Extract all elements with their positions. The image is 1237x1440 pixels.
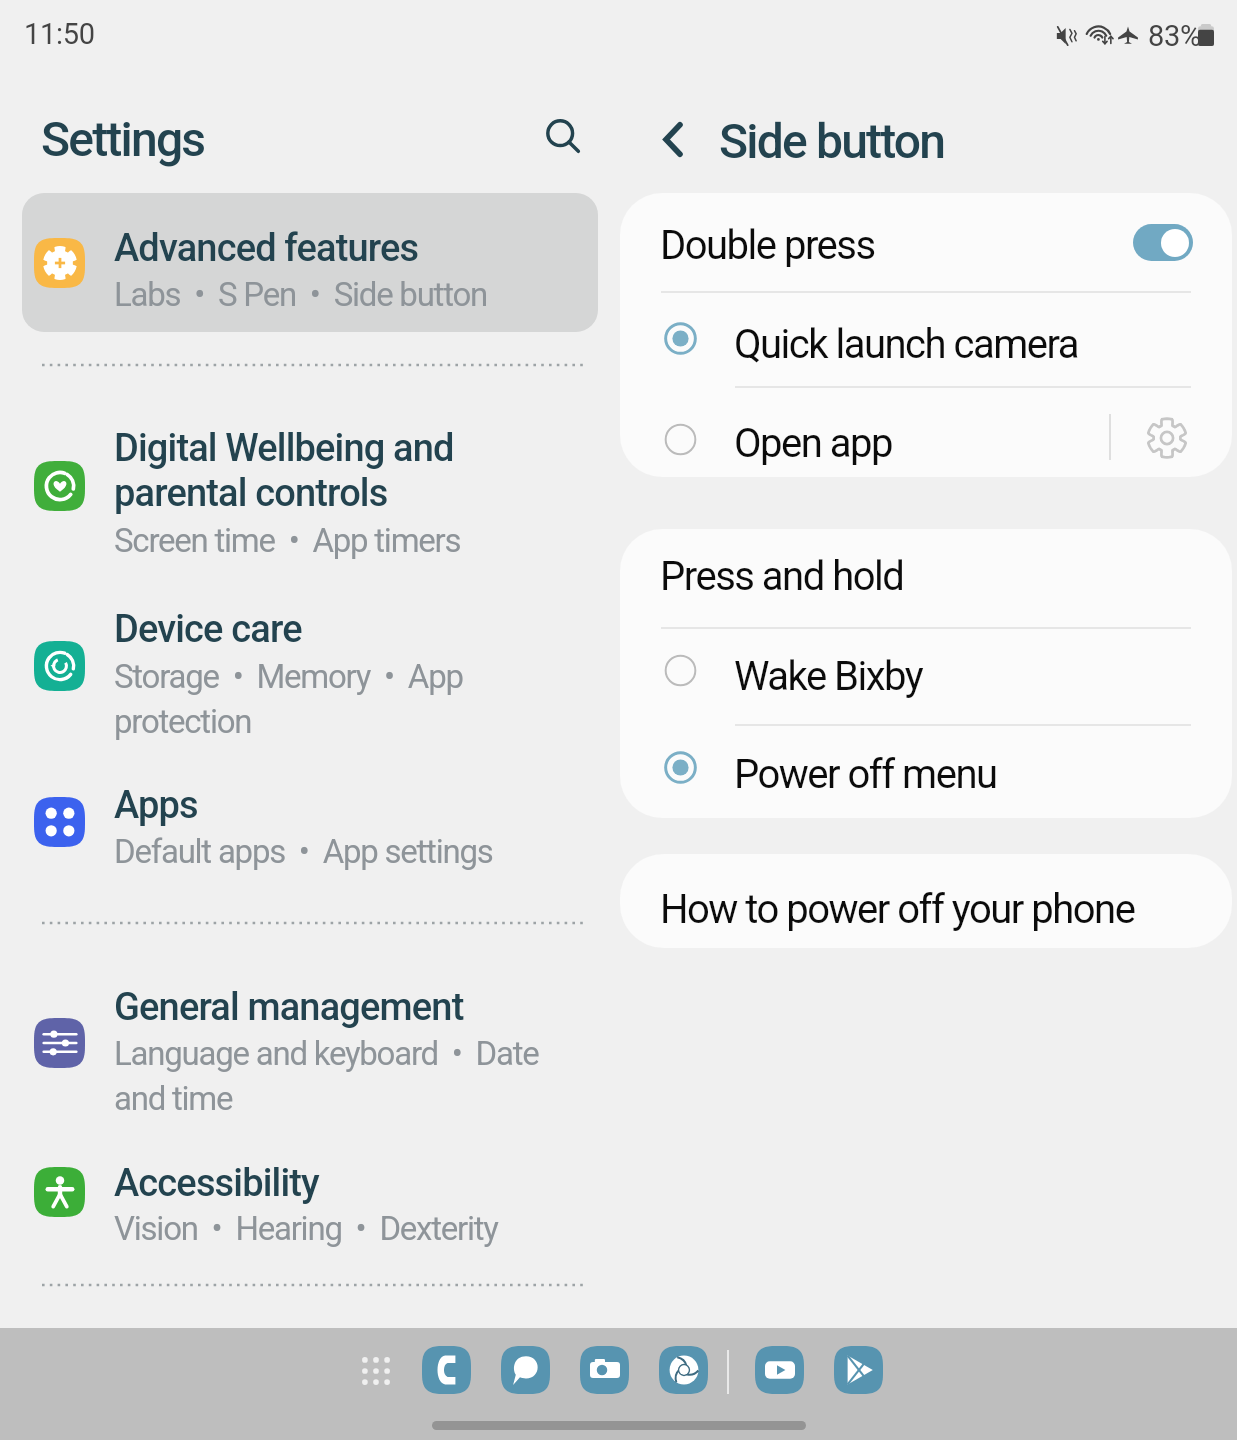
staticText: Storage • Memory • App protection — [114, 652, 463, 742]
button[interactable]: Wake Bixby — [620, 629, 1232, 724]
button[interactable]: Quick launch camera — [620, 293, 1232, 386]
button[interactable]: Back — [655, 108, 691, 170]
button[interactable]: Camera — [580, 1346, 629, 1394]
button[interactable]: Open app — [620, 388, 1232, 477]
button[interactable]: Play Store — [834, 1346, 883, 1394]
button[interactable]: YouTube — [755, 1346, 804, 1394]
staticText: Wake Bixby — [734, 653, 923, 700]
button[interactable] — [22, 193, 598, 332]
button[interactable] — [22, 1150, 598, 1250]
staticText: Power off menu — [734, 751, 997, 798]
button[interactable] — [22, 772, 598, 872]
button[interactable] — [22, 974, 598, 1122]
button[interactable]: How to power off your phone — [620, 854, 1232, 948]
staticText: 83% — [1148, 19, 1201, 53]
staticText: Side button — [719, 113, 945, 169]
staticText: Press and hold — [660, 553, 904, 600]
button[interactable]: Open app settings — [1138, 409, 1196, 467]
staticText: Settings — [41, 111, 205, 167]
button[interactable] — [22, 596, 598, 736]
button[interactable]: Chrome — [659, 1346, 708, 1394]
staticText: Vision • Hearing • Dexterity — [114, 1204, 498, 1249]
staticText: Apps — [114, 782, 198, 827]
staticText: Double press — [660, 222, 875, 269]
button[interactable]: All apps — [348, 1343, 404, 1399]
staticText: Device care — [114, 606, 302, 651]
staticText: Labs • S Pen • Side button — [114, 270, 487, 315]
button[interactable]: Double press toggle — [1133, 224, 1193, 261]
staticText: Screen time • App timers — [114, 516, 461, 561]
button[interactable]: Power off menu — [620, 726, 1232, 818]
staticText: How to power off your phone — [660, 886, 1135, 933]
staticText: Open app — [734, 420, 892, 467]
button[interactable]: Search — [532, 105, 594, 167]
button[interactable]: Messages — [501, 1346, 550, 1394]
staticText: General management — [114, 984, 464, 1029]
staticText: Default apps • App settings — [114, 827, 493, 872]
staticText: Quick launch camera — [734, 321, 1078, 368]
button[interactable]: Phone — [422, 1346, 471, 1394]
button[interactable]: Double press — [620, 193, 1232, 291]
staticText: Digital Wellbeing and parental controls — [114, 425, 454, 515]
staticText: Accessibility — [114, 1160, 319, 1205]
button[interactable] — [22, 415, 598, 565]
staticText: Language and keyboard • Date and time — [114, 1029, 539, 1119]
staticText: 11:50 — [24, 17, 95, 51]
staticText: Advanced features — [114, 225, 419, 270]
